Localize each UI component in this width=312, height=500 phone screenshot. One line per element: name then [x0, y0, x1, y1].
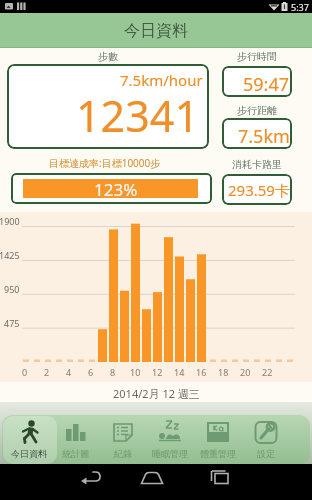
staticText: 475	[4, 317, 20, 329]
button[interactable]	[132, 464, 172, 490]
staticText: 293.59卡	[228, 180, 290, 200]
staticText: 紀錄	[114, 448, 132, 459]
staticText: 7.5km/hour	[120, 70, 203, 90]
staticText: 6	[88, 366, 94, 378]
staticText: 體重管理	[200, 448, 236, 459]
staticText: 1425	[0, 249, 20, 261]
staticText: 0	[22, 366, 28, 378]
staticText: 今日資料	[11, 448, 47, 459]
staticText: 今日資料	[124, 21, 188, 41]
staticText: 18	[218, 366, 229, 378]
staticText: 統計圖	[62, 448, 89, 459]
button[interactable]: 統計圖	[52, 415, 99, 465]
staticText: 12341	[76, 86, 199, 145]
staticText: 消耗卡路里	[232, 158, 282, 171]
staticText: 7.5km	[238, 124, 290, 149]
staticText: 950	[4, 283, 20, 295]
staticText: 59:47	[243, 72, 290, 97]
staticText: 步數	[98, 50, 118, 63]
button[interactable]	[71, 464, 111, 490]
button[interactable]: 紀錄	[99, 415, 146, 465]
staticText: 設定	[257, 448, 275, 459]
button[interactable]: 設定	[242, 415, 290, 465]
staticText: 10	[130, 366, 141, 378]
staticText: 1900	[0, 215, 20, 227]
staticText: 123%	[94, 178, 138, 201]
staticText: 20	[240, 366, 251, 378]
staticText: 8	[110, 366, 116, 378]
button[interactable]	[201, 464, 241, 490]
staticText: 步行距離	[237, 104, 277, 117]
staticText: 16	[196, 366, 207, 378]
staticText: 5:37	[291, 1, 309, 13]
button[interactable]: 體重管理	[194, 415, 242, 465]
button[interactable]: 睡眠管理	[146, 415, 194, 465]
staticText: 22	[262, 366, 273, 378]
staticText: 2	[44, 366, 50, 378]
staticText: 12	[152, 366, 163, 378]
staticText: 14	[174, 366, 185, 378]
staticText: 睡眠管理	[152, 448, 188, 459]
staticText: 2014/2月 12 週三	[113, 386, 200, 401]
button[interactable]: 今日資料	[5, 415, 52, 465]
staticText: 4	[66, 366, 72, 378]
staticText: 目標達成率:目標10000步	[49, 156, 161, 170]
staticText: 步行時間	[237, 50, 277, 63]
